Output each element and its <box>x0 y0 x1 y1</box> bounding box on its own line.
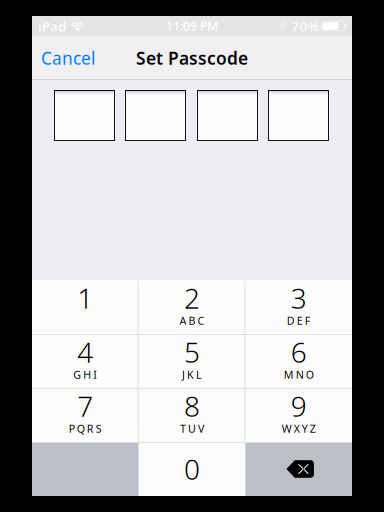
staticText: Cancel <box>41 46 95 69</box>
staticText: DEF <box>287 313 311 328</box>
button[interactable]: 8 <box>139 388 245 442</box>
button[interactable]: Cancel <box>32 36 104 80</box>
button[interactable]: 1 <box>32 280 139 334</box>
staticText: 8 <box>184 387 200 425</box>
button[interactable]: 7 <box>32 388 139 442</box>
staticText: 0 <box>184 450 200 488</box>
staticText: Set Passcode <box>136 46 248 69</box>
staticText: JKL <box>182 367 202 382</box>
staticText: 1 <box>77 279 93 317</box>
button[interactable]: Delete <box>245 442 352 496</box>
staticText: ABC <box>179 313 204 328</box>
button[interactable]: 6 <box>245 334 352 388</box>
staticText: 9 <box>291 387 307 425</box>
button[interactable]: 3 <box>245 280 352 334</box>
staticText: PQRS <box>69 421 102 436</box>
staticText: 4 <box>77 333 93 371</box>
button[interactable]: 2 <box>139 280 245 334</box>
button[interactable]: 5 <box>139 334 245 388</box>
staticText: 11:09 PM <box>166 18 218 34</box>
staticText: 5 <box>184 333 200 371</box>
staticText: 3 <box>291 279 307 317</box>
button[interactable]: 9 <box>245 388 352 442</box>
staticText: 7 <box>77 387 93 425</box>
staticText: iPad <box>38 17 66 35</box>
staticText: GHI <box>73 367 97 382</box>
button[interactable]: 0 <box>139 442 245 496</box>
staticText: TUV <box>180 421 204 436</box>
staticText: MNO <box>284 367 314 382</box>
staticText: WXYZ <box>282 421 316 436</box>
staticText: 70% <box>291 17 318 35</box>
staticText: 6 <box>291 333 307 371</box>
staticText: 2 <box>184 279 200 317</box>
button[interactable]: 4 <box>32 334 139 388</box>
